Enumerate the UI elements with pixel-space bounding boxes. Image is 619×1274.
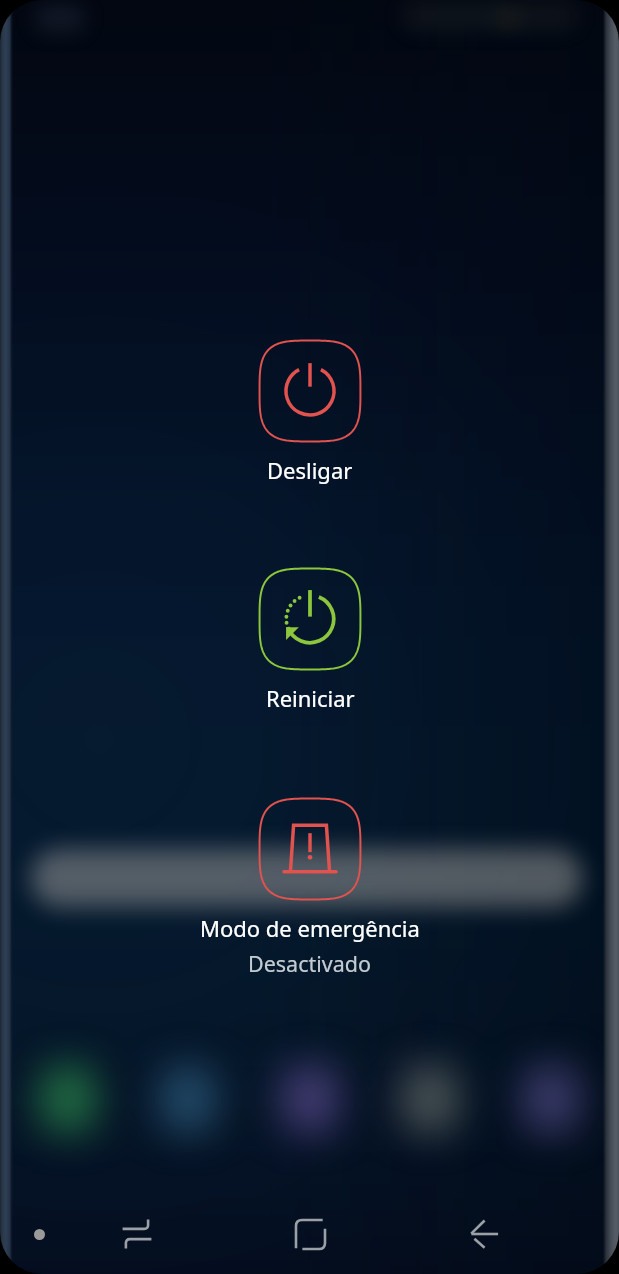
staticText: Reiniciar xyxy=(266,683,355,713)
button[interactable]: Recent apps xyxy=(92,1189,182,1274)
staticText: Desligar xyxy=(267,455,353,485)
staticText: Modo de emergência xyxy=(200,913,420,943)
staticText: Desactivado xyxy=(248,949,372,978)
button[interactable]: Modo de emergência xyxy=(200,797,420,978)
button[interactable]: Desligar xyxy=(258,339,362,485)
button[interactable]: Home xyxy=(265,1189,355,1274)
button[interactable]: Keyboard xyxy=(4,1199,74,1269)
button[interactable]: Reiniciar xyxy=(258,567,362,713)
button[interactable]: Back xyxy=(439,1189,529,1274)
